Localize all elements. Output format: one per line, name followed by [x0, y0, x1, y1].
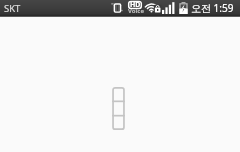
staticText: Voice [128, 7, 142, 15]
staticText: 오전 1:59 [191, 1, 234, 15]
button[interactable]: Widget [112, 87, 125, 130]
staticText: SKT [4, 2, 21, 15]
staticText: HD [130, 0, 141, 10]
